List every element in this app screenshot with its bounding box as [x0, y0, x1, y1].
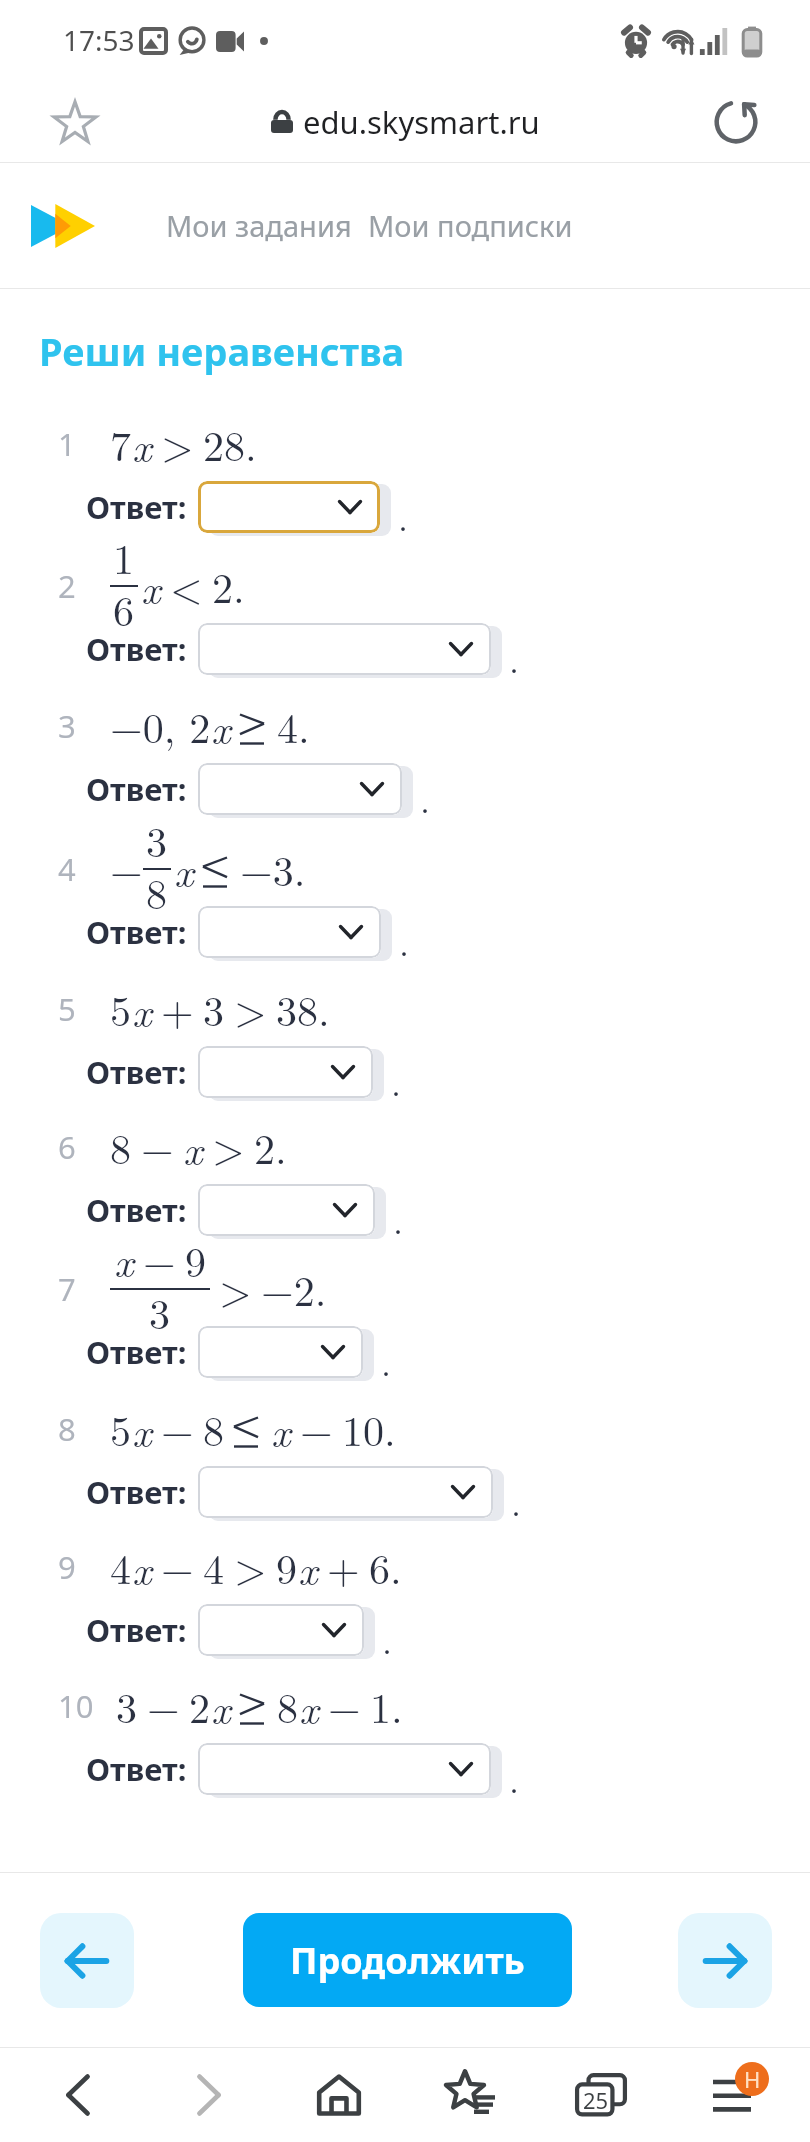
staticText: 38.: [276, 979, 330, 1039]
staticText: −: [300, 1399, 333, 1459]
button[interactable]: Answer: [198, 1046, 373, 1098]
staticText: x: [299, 1677, 319, 1736]
staticText: <: [170, 556, 203, 616]
staticText: −: [147, 1676, 180, 1736]
button[interactable]: Previous: [40, 1913, 134, 2008]
staticText: .: [511, 1475, 522, 1526]
staticText: 5: [58, 988, 76, 1030]
staticText: Ответ:: [86, 628, 187, 670]
staticText: −: [110, 839, 143, 899]
staticText: 4: [203, 1537, 225, 1597]
staticText: .: [393, 1193, 404, 1244]
staticText: Ответ:: [86, 1748, 187, 1790]
button[interactable]: Answer: [198, 623, 491, 675]
staticText: Реши неравенства: [39, 325, 405, 377]
staticText: 5: [110, 1399, 132, 1459]
staticText: x: [183, 1118, 203, 1177]
staticText: >: [219, 1259, 252, 1319]
staticText: x: [211, 1677, 231, 1736]
staticText: 8: [203, 1399, 225, 1459]
staticText: Ответ:: [86, 768, 187, 810]
staticText: 7: [58, 1268, 76, 1310]
staticText: Ответ:: [86, 1051, 187, 1093]
button[interactable]: Answer: [198, 1743, 491, 1795]
staticText: 8: [58, 1408, 76, 1450]
staticText: 3: [146, 810, 168, 870]
button[interactable]: Answer: [198, 1466, 493, 1518]
button[interactable]: Reading list: [425, 2050, 515, 2140]
button[interactable]: Home: [294, 2050, 384, 2140]
staticText: Ответ:: [86, 486, 187, 528]
staticText: 3: [203, 979, 225, 1039]
button[interactable]: Menu: [687, 2050, 777, 2140]
staticText: x: [114, 1230, 134, 1289]
staticText: 6.: [369, 1537, 402, 1597]
staticText: x: [141, 557, 161, 616]
staticText: x: [132, 415, 152, 474]
staticText: >: [234, 979, 267, 1039]
staticText: 4: [58, 848, 76, 890]
button[interactable]: Мои задания: [158, 194, 360, 257]
staticText: 2.: [212, 556, 245, 616]
staticText: 5: [110, 979, 132, 1039]
staticText: .: [398, 490, 409, 541]
staticText: 3: [116, 1676, 138, 1736]
staticText: 4.: [277, 696, 310, 756]
staticText: 2.: [254, 1117, 287, 1177]
staticText: 6: [58, 1126, 76, 1168]
staticText: 8: [277, 1676, 299, 1736]
staticText: 9: [58, 1546, 76, 1588]
staticText: 1: [113, 527, 135, 587]
staticText: 8: [110, 1117, 132, 1177]
button[interactable]: Answer: [198, 1184, 375, 1236]
staticText: 6: [113, 579, 135, 639]
button[interactable]: Tabs: [556, 2050, 646, 2140]
staticText: >: [212, 1117, 245, 1177]
staticText: 7: [110, 414, 132, 474]
button[interactable]: Forward: [164, 2050, 254, 2140]
button[interactable]: Next: [678, 1913, 772, 2008]
button[interactable]: Продолжить: [243, 1913, 572, 2007]
button[interactable]: Мои подписки: [360, 194, 581, 257]
staticText: −: [143, 1230, 176, 1290]
staticText: 9: [185, 1230, 207, 1290]
staticText: H: [744, 2064, 761, 2094]
button[interactable]: Answer: [198, 763, 402, 815]
staticText: >: [161, 414, 194, 474]
staticText: 9: [276, 1537, 298, 1597]
button[interactable]: Bookmark: [39, 86, 111, 158]
staticText: x: [298, 1538, 318, 1597]
staticText: −2.: [261, 1259, 327, 1319]
staticText: >: [234, 1537, 267, 1597]
button[interactable]: Answer: [198, 1604, 364, 1656]
button[interactable]: Reload: [700, 86, 772, 158]
staticText: x: [132, 1400, 152, 1459]
staticText: .: [509, 632, 520, 683]
button[interactable]: Answer: [198, 906, 381, 958]
staticText: .: [382, 1613, 393, 1664]
staticText: 10: [58, 1685, 94, 1727]
staticText: x: [132, 1538, 152, 1597]
button[interactable]: Answer: [198, 481, 380, 533]
staticText: x: [174, 840, 194, 899]
staticText: −: [141, 1117, 174, 1177]
staticText: 17:53: [63, 21, 135, 59]
staticText: 2: [58, 565, 76, 607]
staticText: +: [327, 1537, 360, 1597]
staticText: Ответ:: [86, 1189, 187, 1231]
staticText: Мои подписки: [368, 206, 573, 245]
staticText: 2: [189, 1676, 211, 1736]
staticText: x: [132, 980, 152, 1039]
staticText: 28.: [203, 414, 257, 474]
staticText: Мои задания: [166, 206, 352, 245]
staticText: −: [328, 1676, 361, 1736]
staticText: .: [420, 772, 431, 823]
button[interactable]: Answer: [198, 1326, 363, 1378]
staticText: −: [161, 1537, 194, 1597]
staticText: 10.: [342, 1399, 396, 1459]
button[interactable]: Back: [33, 2050, 123, 2140]
staticText: 25: [583, 2085, 609, 2115]
staticText: 3: [149, 1282, 171, 1342]
staticText: x: [211, 697, 231, 756]
staticText: Продолжить: [290, 1936, 525, 1985]
